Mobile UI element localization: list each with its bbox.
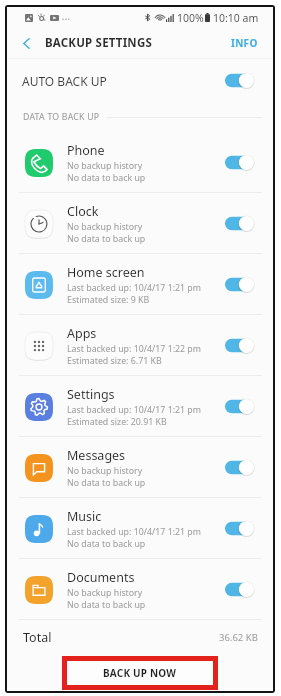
button[interactable]: Clock bbox=[7, 193, 273, 254]
staticText: No data to back up bbox=[67, 599, 146, 611]
button[interactable]: Phone bbox=[7, 132, 273, 193]
staticText: No data to back up bbox=[67, 172, 146, 184]
button[interactable]: Toggle bbox=[225, 520, 254, 537]
staticText: Messages bbox=[67, 447, 126, 464]
staticText: AUTO BACK UP bbox=[22, 73, 107, 89]
staticText: Documents bbox=[67, 569, 135, 586]
staticText: DATA TO BACK UP bbox=[23, 111, 100, 123]
button[interactable]: Apps bbox=[7, 315, 273, 376]
staticText: Home screen bbox=[67, 264, 145, 281]
staticText: Last backed up: 10/4/17 1:21 pm bbox=[67, 526, 202, 538]
staticText: Last backed up: 10/4/17 1:21 pm bbox=[67, 404, 202, 416]
staticText: No backup history bbox=[67, 160, 143, 172]
staticText: 100% bbox=[177, 11, 204, 25]
staticText: No backup history bbox=[67, 587, 143, 599]
button[interactable]: Toggle bbox=[225, 581, 254, 598]
button[interactable]: Home screen bbox=[7, 254, 273, 315]
staticText: No backup history bbox=[67, 465, 143, 477]
staticText: Music bbox=[67, 508, 102, 525]
staticText: No data to back up bbox=[67, 233, 146, 245]
button[interactable]: Toggle bbox=[225, 154, 254, 171]
button[interactable]: INFO bbox=[221, 28, 273, 58]
staticText: Clock bbox=[67, 203, 99, 220]
staticText: INFO bbox=[231, 36, 258, 50]
staticText: Phone bbox=[67, 142, 105, 159]
staticText: Settings bbox=[67, 386, 115, 403]
staticText: Estimated size: 6.71 KB bbox=[67, 355, 162, 367]
staticText: No data to back up bbox=[67, 477, 146, 489]
staticText: 36.62 KB bbox=[219, 631, 258, 644]
staticText: BACKUP SETTINGS bbox=[45, 35, 152, 51]
button[interactable]: Navigate up bbox=[7, 28, 45, 58]
staticText: Last backed up: 10/4/17 1:22 pm bbox=[67, 343, 202, 355]
button[interactable]: Toggle bbox=[225, 398, 254, 415]
button[interactable]: BACK UP NOW bbox=[67, 661, 213, 685]
button[interactable]: Music bbox=[7, 498, 273, 559]
staticText: BACK UP NOW bbox=[103, 666, 177, 680]
button[interactable]: Toggle bbox=[225, 72, 254, 89]
staticText: Apps bbox=[67, 325, 97, 342]
button[interactable]: Settings bbox=[7, 376, 273, 437]
button[interactable]: Documents bbox=[7, 559, 273, 620]
staticText: 10:10 am bbox=[213, 11, 259, 25]
staticText: Estimated size: 9 KB bbox=[67, 294, 150, 306]
button[interactable]: Messages bbox=[7, 437, 273, 498]
button[interactable]: Toggle bbox=[225, 215, 254, 232]
staticText: Estimated size: 20.91 KB bbox=[67, 416, 167, 428]
button[interactable]: AUTO BACK UP bbox=[7, 59, 273, 102]
staticText: No data to back up bbox=[67, 538, 146, 550]
button[interactable]: Toggle bbox=[225, 276, 254, 293]
staticText: No backup history bbox=[67, 221, 143, 233]
staticText: Total bbox=[23, 629, 52, 646]
button[interactable]: Toggle bbox=[225, 459, 254, 476]
staticText: Last backed up: 10/4/17 1:21 pm bbox=[67, 282, 202, 294]
button[interactable]: Toggle bbox=[225, 337, 254, 354]
